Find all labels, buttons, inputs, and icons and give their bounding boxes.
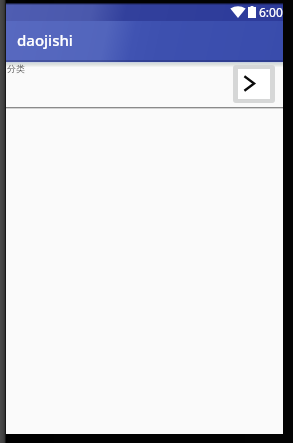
staticText: daojishi <box>17 30 73 50</box>
staticText: 6:00 <box>259 4 283 20</box>
staticText: 分类 <box>7 63 25 74</box>
button[interactable]: Next <box>233 65 275 103</box>
button[interactable]: 分类 <box>6 63 216 103</box>
